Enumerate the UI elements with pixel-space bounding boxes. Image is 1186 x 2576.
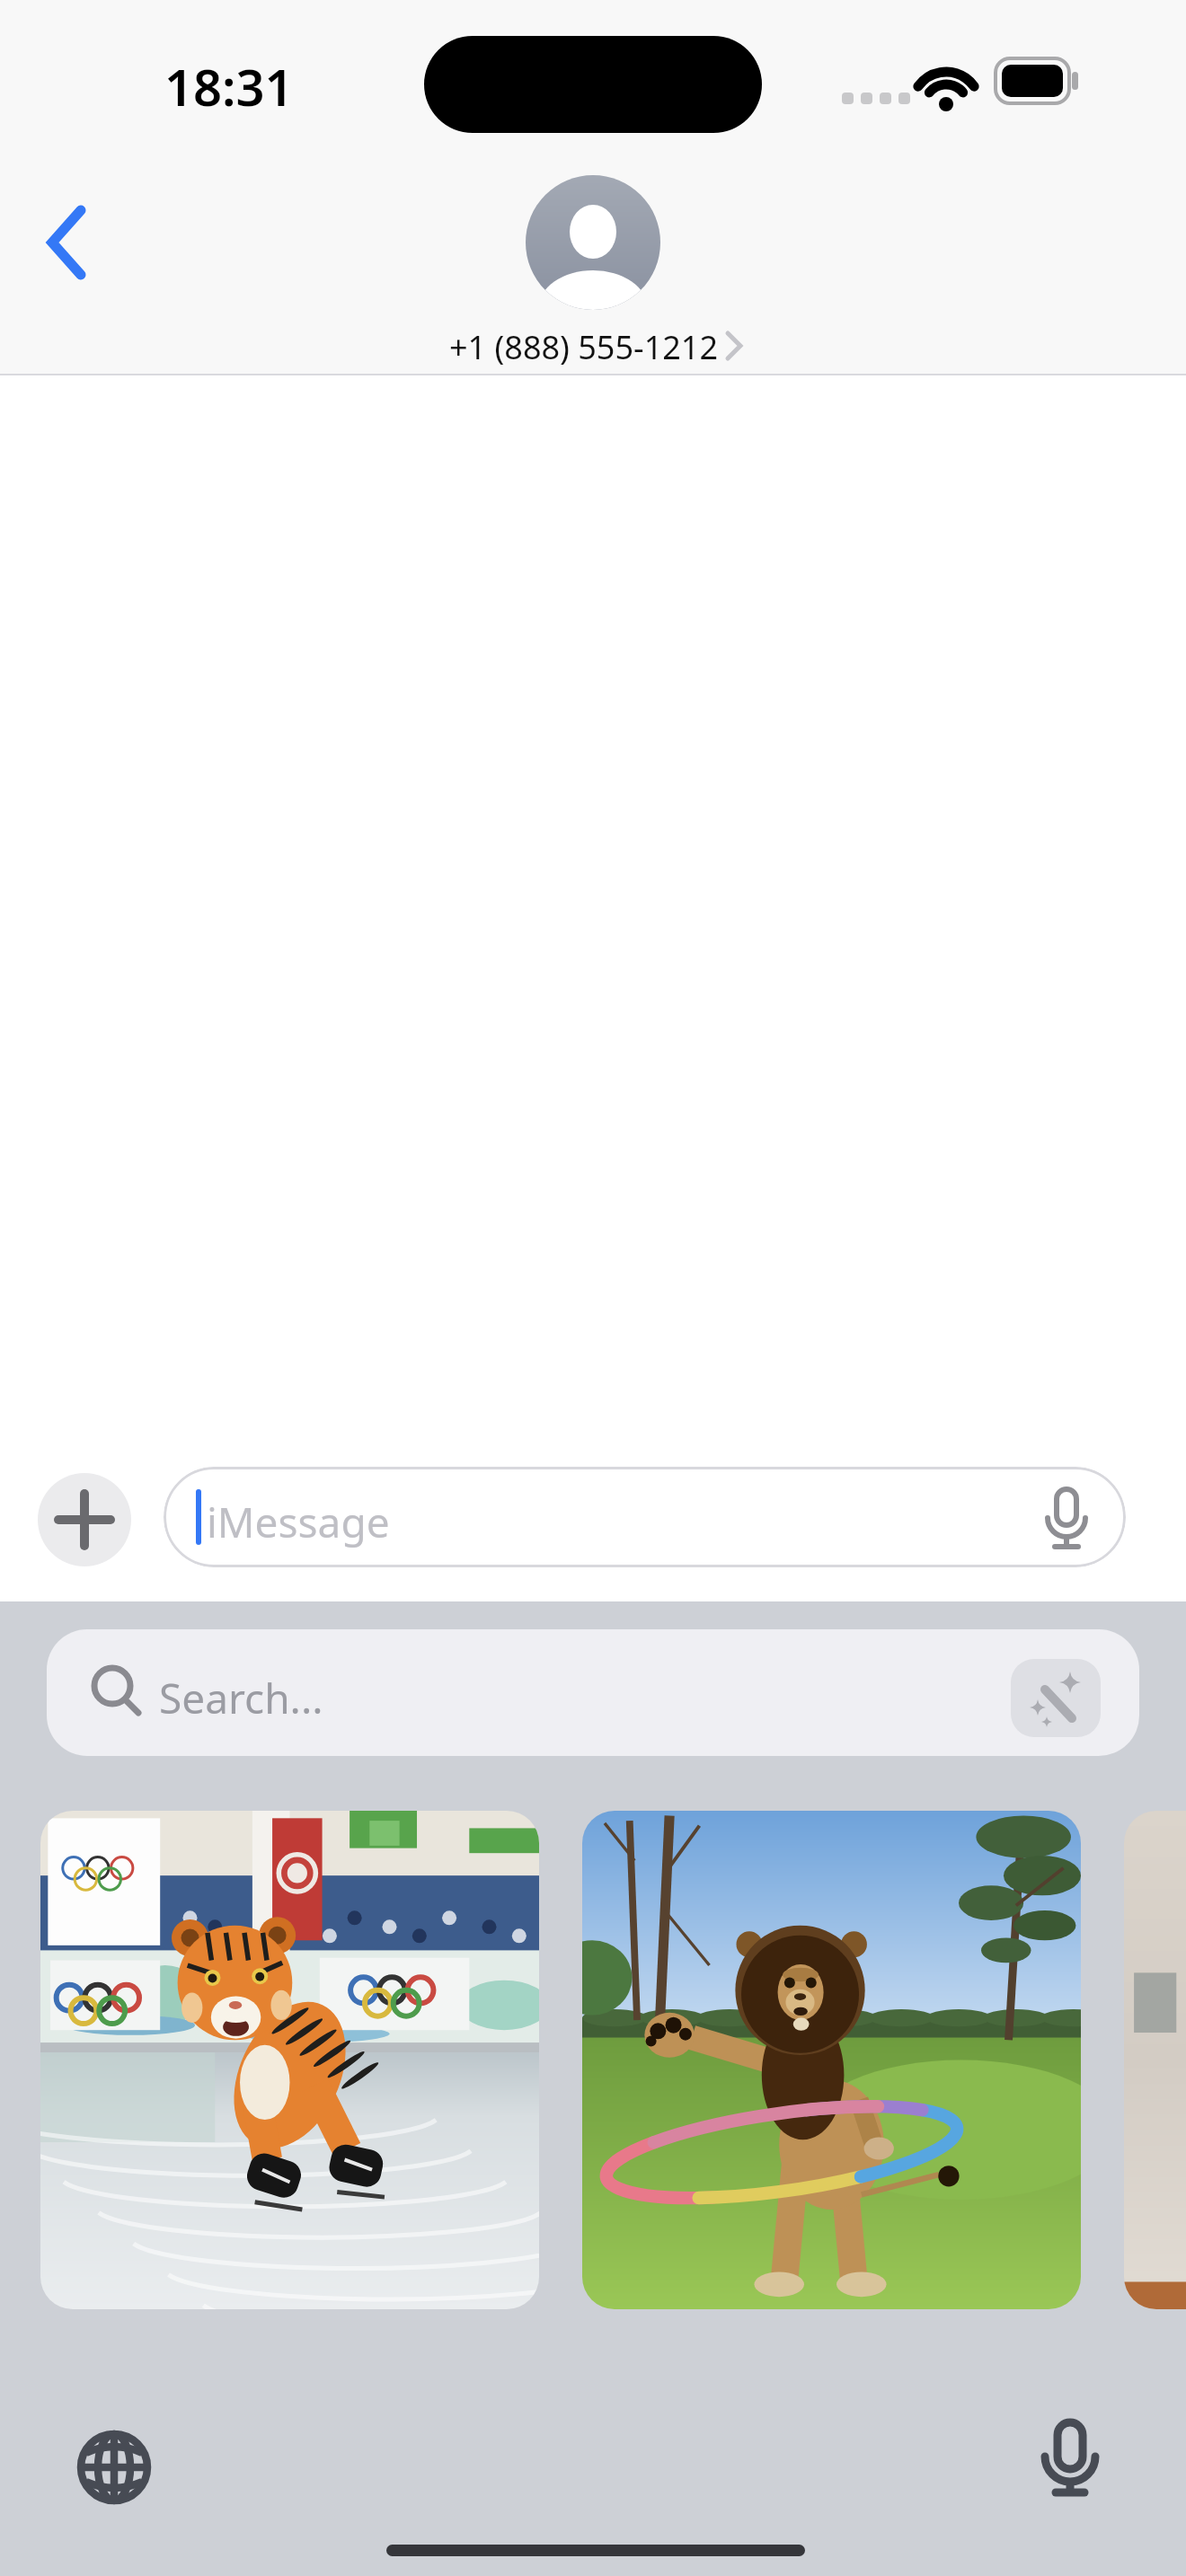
staticText: 18:31 xyxy=(164,52,294,120)
button[interactable] xyxy=(78,2431,150,2503)
button[interactable]: Search... xyxy=(47,1629,1139,1756)
button[interactable]: +1 (888) 555-1212 xyxy=(449,325,719,369)
button[interactable] xyxy=(40,1811,539,2309)
button[interactable] xyxy=(38,1473,131,1566)
button[interactable] xyxy=(1011,1659,1101,1737)
button[interactable]: iMessage xyxy=(164,1467,1126,1567)
staticText: Search... xyxy=(159,1670,323,1726)
button[interactable] xyxy=(45,207,90,278)
button[interactable] xyxy=(526,175,660,310)
button[interactable] xyxy=(1040,2421,1100,2501)
button[interactable] xyxy=(582,1811,1081,2309)
button[interactable] xyxy=(1124,1811,1186,2309)
staticText: iMessage xyxy=(207,1494,390,1550)
